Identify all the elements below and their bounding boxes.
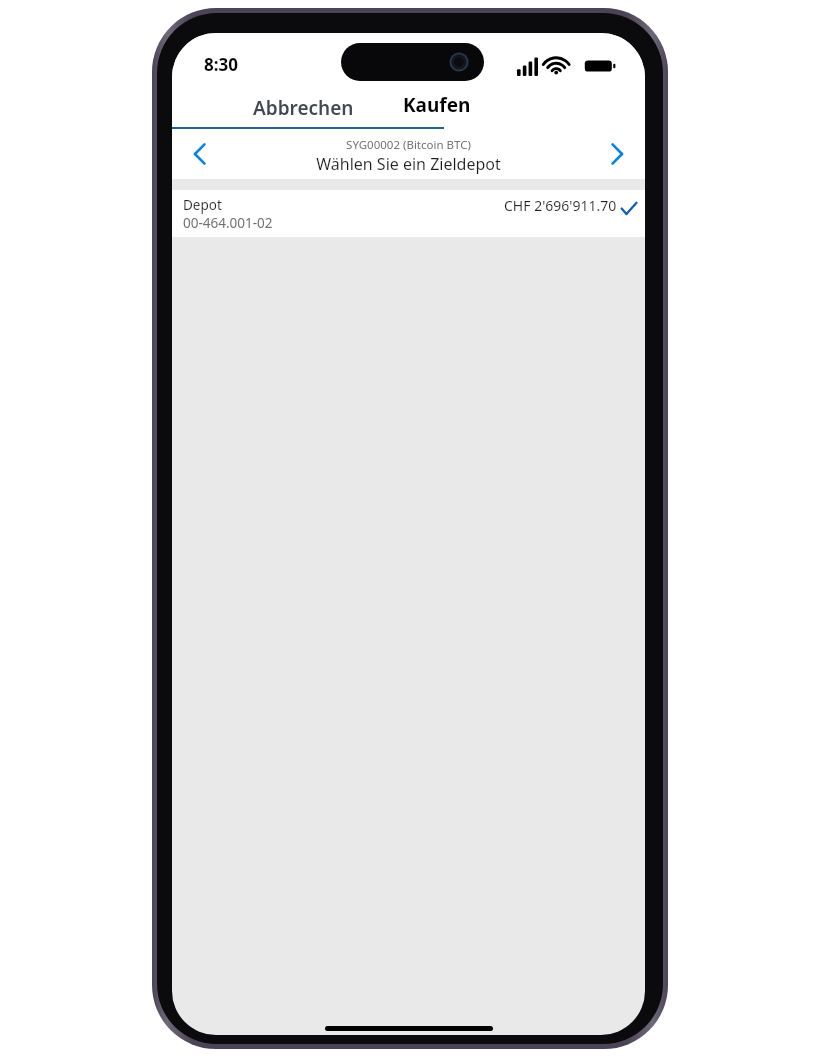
- staticText: CHF 2'696'911.70: [504, 196, 617, 215]
- staticText: Depot: [183, 196, 222, 214]
- staticText: Kaufen: [403, 92, 471, 118]
- staticText: Wählen Sie ein Zieldepot: [316, 153, 501, 175]
- staticText: Abbrechen: [253, 95, 354, 121]
- staticText: 00-464.001-02: [183, 214, 273, 232]
- staticText: 8:30: [204, 53, 238, 76]
- button[interactable]: Kaufen: [442, 88, 645, 128]
- button[interactable]: Abbrechen: [172, 88, 442, 128]
- button[interactable]: Depot: [172, 190, 645, 237]
- button[interactable]: Weiter: [595, 132, 639, 176]
- staticText: SYG00002 (Bitcoin BTC): [346, 137, 471, 153]
- button[interactable]: Zurück: [178, 132, 222, 176]
